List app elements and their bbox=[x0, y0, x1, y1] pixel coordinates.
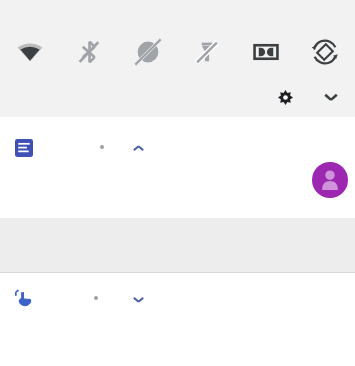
button[interactable]: Bluetooth off bbox=[59, 30, 118, 74]
button[interactable]: Settings bbox=[263, 82, 307, 112]
button[interactable]: Expand bbox=[307, 82, 355, 112]
button[interactable]: Collapse bbox=[121, 131, 155, 165]
button[interactable]: Touch interaction notification bbox=[10, 285, 38, 313]
button[interactable]: Wi-Fi bbox=[0, 30, 59, 74]
button[interactable]: Contact photo bbox=[312, 162, 348, 198]
button[interactable]: Touch interaction notification bbox=[0, 273, 355, 319]
button[interactable]: Messages notification bbox=[10, 134, 38, 162]
button[interactable]: Dolby audio bbox=[236, 30, 295, 74]
button[interactable]: Do not disturb off bbox=[118, 30, 177, 74]
button[interactable]: Expand bbox=[121, 282, 155, 316]
button[interactable]: Auto rotate bbox=[295, 30, 354, 74]
button[interactable]: Flashlight off bbox=[177, 30, 236, 74]
button[interactable]: Messages notification bbox=[0, 117, 355, 218]
